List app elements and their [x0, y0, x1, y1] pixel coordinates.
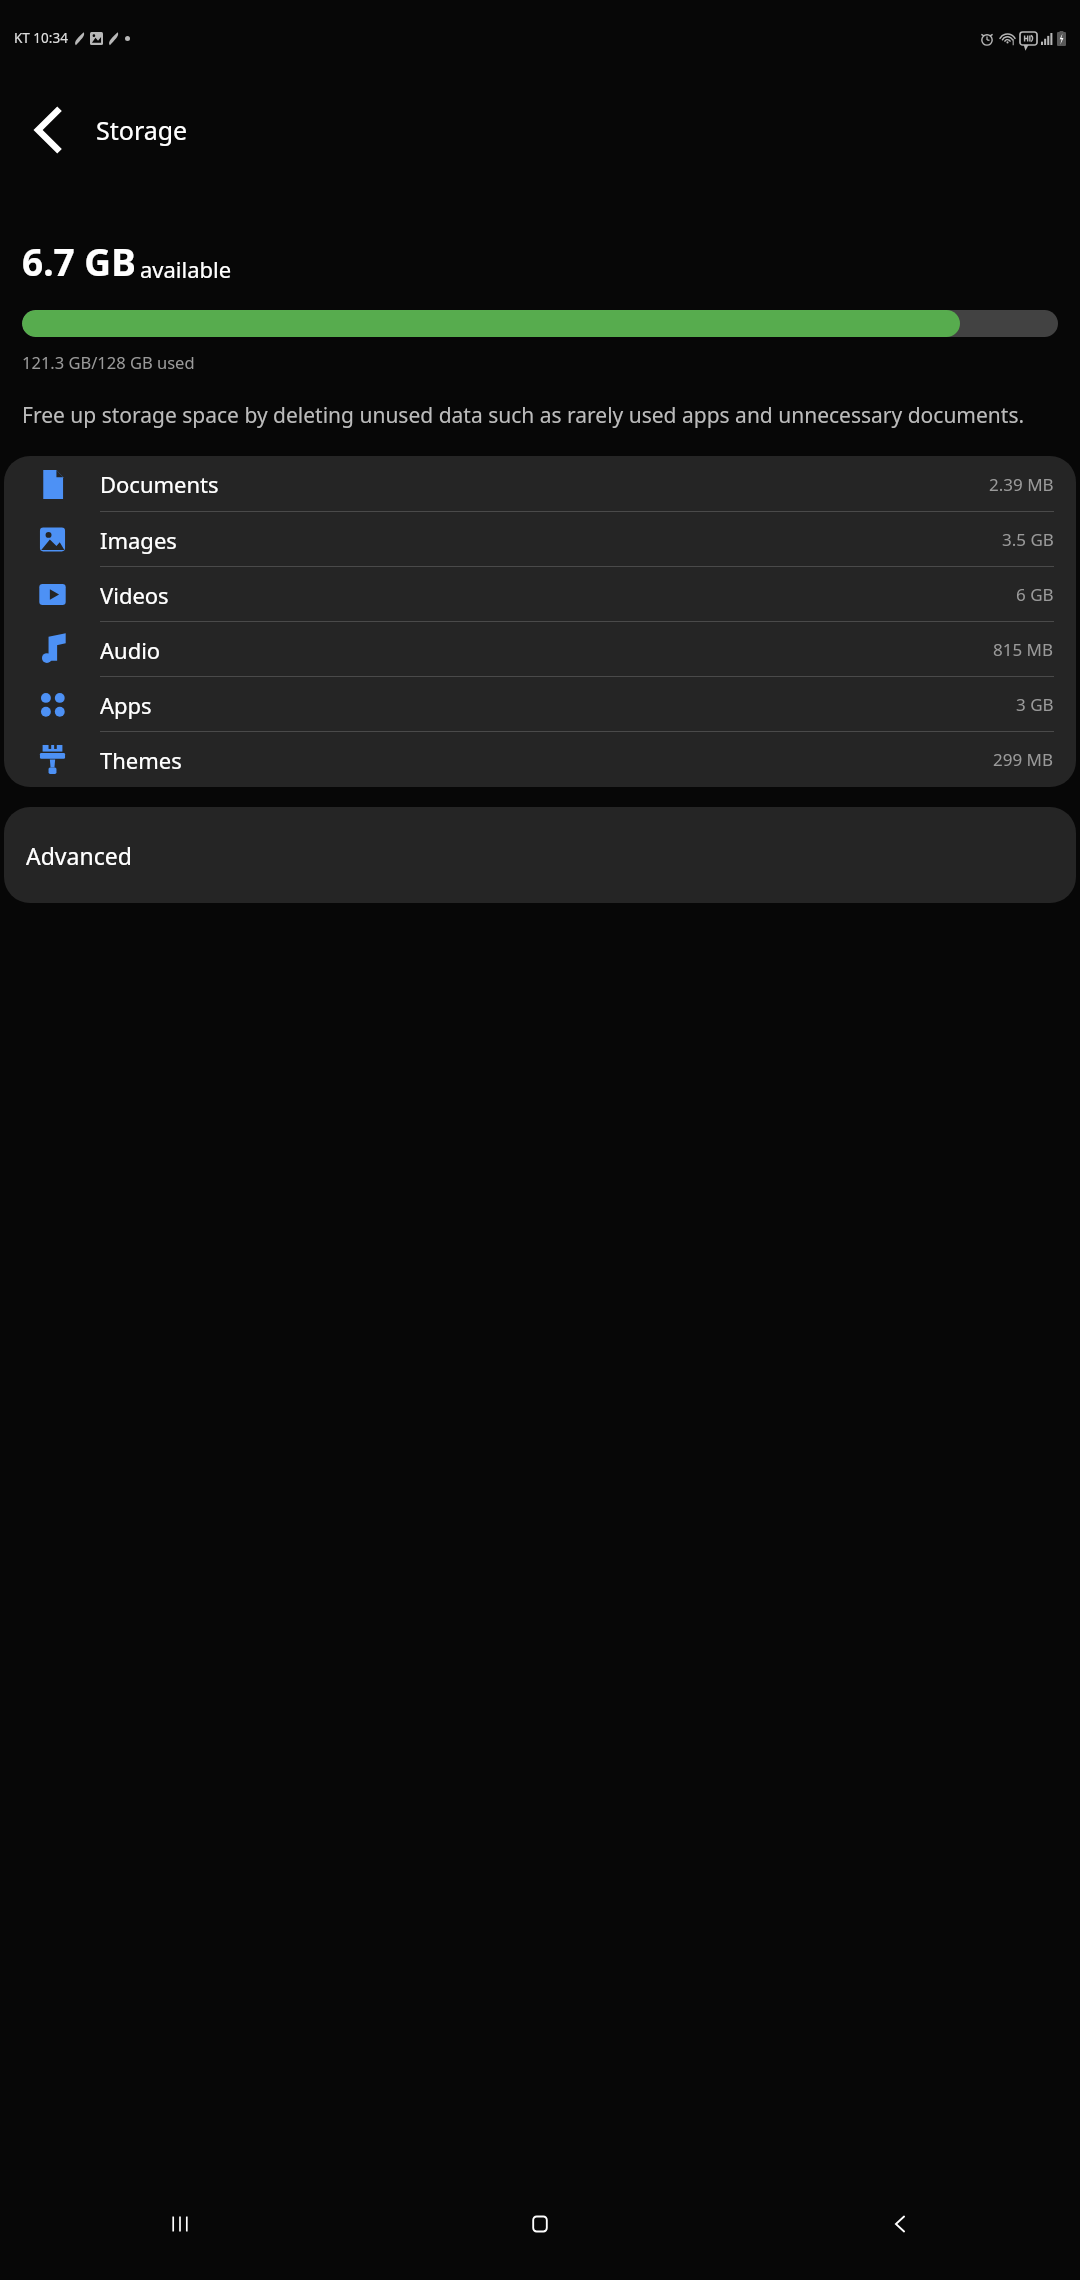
staticText: Documents: [100, 469, 219, 499]
staticText: 3.5 GB: [1002, 528, 1054, 551]
staticText: Storage: [96, 113, 188, 147]
staticText: 3 GB: [1016, 693, 1054, 716]
staticText: 6 GB: [1016, 583, 1054, 606]
staticText: Advanced: [26, 840, 132, 871]
button[interactable]: Documents: [4, 456, 1076, 512]
staticText: Images: [100, 525, 177, 555]
button[interactable]: Videos: [4, 567, 1076, 622]
button[interactable]: Themes: [4, 732, 1076, 787]
button[interactable]: Recents: [0, 2168, 360, 2280]
staticText: 121.3 GB/128 GB used: [22, 351, 195, 373]
staticText: Themes: [100, 745, 182, 775]
button[interactable]: Images: [4, 512, 1076, 567]
staticText: Free up storage space by deleting unused…: [22, 401, 1025, 430]
button[interactable]: Back: [0, 82, 96, 178]
staticText: 815 MB: [993, 638, 1054, 661]
button[interactable]: Audio: [4, 622, 1076, 677]
staticText: Apps: [100, 690, 152, 720]
button[interactable]: Home: [360, 2168, 720, 2280]
staticText: available: [140, 254, 232, 284]
staticText: Videos: [100, 580, 169, 610]
staticText: 299 MB: [993, 748, 1054, 771]
button[interactable]: Advanced: [4, 807, 1076, 903]
staticText: 2.39 MB: [989, 473, 1054, 496]
staticText: 6.7 GB: [22, 236, 136, 286]
staticText: Audio: [100, 635, 161, 665]
button[interactable]: Back: [720, 2168, 1080, 2280]
button[interactable]: Apps: [4, 677, 1076, 732]
staticText: KT 10:34: [14, 29, 68, 47]
